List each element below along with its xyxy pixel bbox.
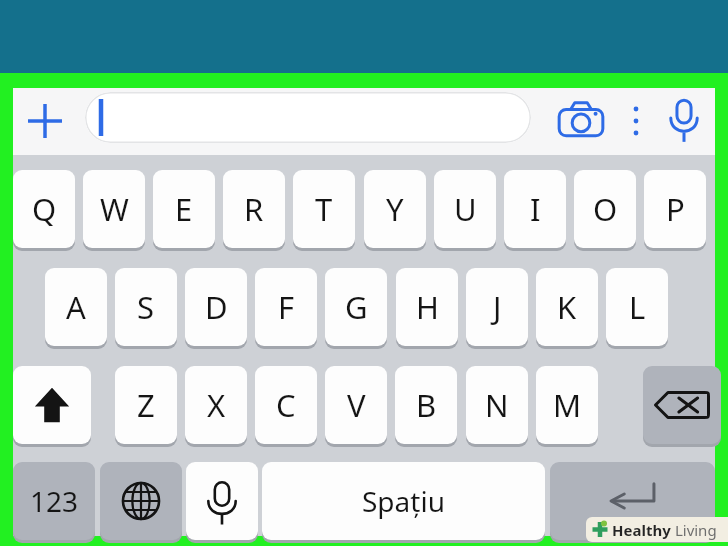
staticText: A — [66, 286, 86, 328]
button[interactable]: Camera — [555, 96, 607, 144]
button[interactable]: K — [536, 268, 598, 346]
button[interactable]: R — [223, 170, 285, 248]
button[interactable]: M — [536, 366, 598, 444]
button[interactable]: T — [293, 170, 355, 248]
button[interactable]: Add attachment — [20, 95, 70, 147]
button[interactable]: Spațiu — [262, 462, 545, 540]
staticText: V — [347, 384, 366, 426]
button[interactable]: D — [185, 268, 247, 346]
button[interactable]: Backspace — [643, 366, 721, 444]
button[interactable]: F — [255, 268, 317, 346]
button[interactable]: H — [396, 268, 458, 346]
staticText: F — [278, 286, 295, 328]
button[interactable]: Enter — [550, 462, 715, 540]
staticText: U — [454, 188, 477, 230]
button[interactable]: More options — [622, 98, 650, 144]
staticText: J — [493, 286, 502, 328]
staticText: G — [345, 286, 368, 328]
staticText: W — [100, 188, 129, 230]
staticText: C — [276, 384, 296, 426]
staticText: R — [244, 188, 264, 230]
staticText: N — [485, 384, 509, 426]
button[interactable]: Y — [364, 170, 426, 248]
staticText: I — [530, 188, 541, 230]
button[interactable]: S — [115, 268, 177, 346]
staticText: Living — [671, 520, 717, 540]
staticText: E — [175, 188, 193, 230]
button[interactable]: J — [466, 268, 528, 346]
staticText: H — [416, 286, 439, 328]
staticText: P — [666, 188, 685, 230]
button[interactable]: Q — [13, 170, 75, 248]
button[interactable]: E — [153, 170, 215, 248]
button[interactable]: G — [325, 268, 387, 346]
staticText: Q — [32, 188, 57, 230]
staticText: M — [553, 384, 582, 426]
staticText: B — [416, 384, 437, 426]
button[interactable]: P — [644, 170, 706, 248]
button[interactable]: U — [434, 170, 496, 248]
button[interactable]: Voice typing — [186, 462, 258, 540]
button[interactable]: V — [325, 366, 387, 444]
button[interactable]: X — [185, 366, 247, 444]
button[interactable]: I — [504, 170, 566, 248]
button[interactable]: Z — [115, 366, 177, 444]
staticText: Z — [137, 384, 155, 426]
staticText: 123 — [30, 482, 79, 520]
button[interactable]: B — [395, 366, 457, 444]
staticText: Y — [386, 188, 404, 230]
staticText: Healthy — [612, 520, 671, 540]
staticText: D — [205, 286, 228, 328]
staticText: K — [557, 286, 577, 328]
button[interactable]: Voice input — [662, 94, 706, 146]
staticText: S — [137, 286, 155, 328]
staticText: O — [593, 188, 618, 230]
button[interactable]: N — [466, 366, 528, 444]
button[interactable]: A — [45, 268, 107, 346]
button[interactable]: 123 — [13, 462, 95, 540]
staticText: Spațiu — [362, 482, 445, 520]
button[interactable]: W — [83, 170, 145, 248]
button[interactable]: L — [606, 268, 668, 346]
button[interactable]: C — [255, 366, 317, 444]
staticText: L — [629, 286, 646, 328]
button[interactable] — [85, 92, 531, 143]
staticText: X — [207, 384, 226, 426]
button[interactable]: O — [574, 170, 636, 248]
button[interactable]: Shift — [13, 366, 91, 444]
button[interactable]: Change language — [100, 462, 182, 540]
staticText: T — [315, 188, 333, 230]
